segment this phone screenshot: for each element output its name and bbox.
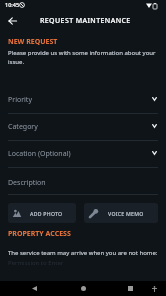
button[interactable]: Location (Optional) [8,141,158,168]
staticText: Priority [8,95,32,105]
button[interactable]: Back [1,10,23,32]
button[interactable]: Category [8,114,158,141]
button[interactable]: VOICE MEMO [84,203,158,223]
staticText: NEW REQUEST [8,37,58,47]
staticText: Please provide us with some information … [8,49,158,66]
button[interactable]: Home [75,281,92,296]
button[interactable]: Description [8,168,158,195]
staticText: VOICE MEMO [108,210,144,217]
staticText: Permission to Enter [8,259,64,267]
staticText: REQUEST MAINTENANCE [40,16,131,26]
button[interactable]: Priority [8,87,158,114]
button[interactable]: Back [26,281,43,296]
button[interactable]: Recent apps [122,281,139,296]
staticText: 10:45 [5,1,20,8]
button[interactable]: ADD PHOTO [8,203,76,223]
staticText: ADD PHOTO [30,210,63,217]
staticText: Location (Optional) [8,149,71,159]
staticText: Description [8,178,46,188]
staticText: Category [8,122,38,132]
button[interactable]: Accessibility [146,281,162,296]
staticText: PROPERTY ACCESS [8,229,71,239]
staticText: The service team may arrive when you are… [8,249,158,257]
